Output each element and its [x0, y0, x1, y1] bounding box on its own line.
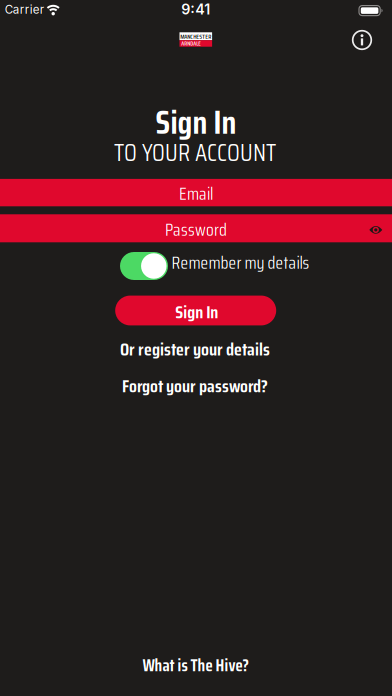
staticText: TO YOUR ACCOUNT [114, 133, 276, 172]
staticText: Or register your details [120, 335, 270, 363]
staticText: Sign In [175, 298, 218, 326]
button[interactable]: Password [0, 214, 392, 242]
staticText: Remember my details [171, 249, 309, 276]
staticText: What is The Hive? [142, 652, 248, 679]
staticText: Sign In [155, 97, 236, 148]
button[interactable]: Email [0, 179, 392, 206]
button[interactable]: Sign In [115, 296, 276, 325]
staticText: 9:41 [181, 1, 210, 18]
button[interactable]: Remember my details [120, 252, 308, 280]
button[interactable]: Or register your details [120, 335, 270, 363]
staticText: ARNDALE [181, 39, 200, 48]
staticText: Email [179, 180, 213, 207]
button[interactable]: What is The Hive? [142, 652, 248, 679]
staticText: Forgot your password? [122, 372, 268, 400]
button[interactable] [349, 27, 375, 53]
button[interactable]: Forgot your password? [122, 372, 268, 400]
staticText: Carrier [5, 3, 44, 17]
staticText: Password [165, 216, 227, 243]
staticText: MANCHESTER [180, 31, 211, 41]
